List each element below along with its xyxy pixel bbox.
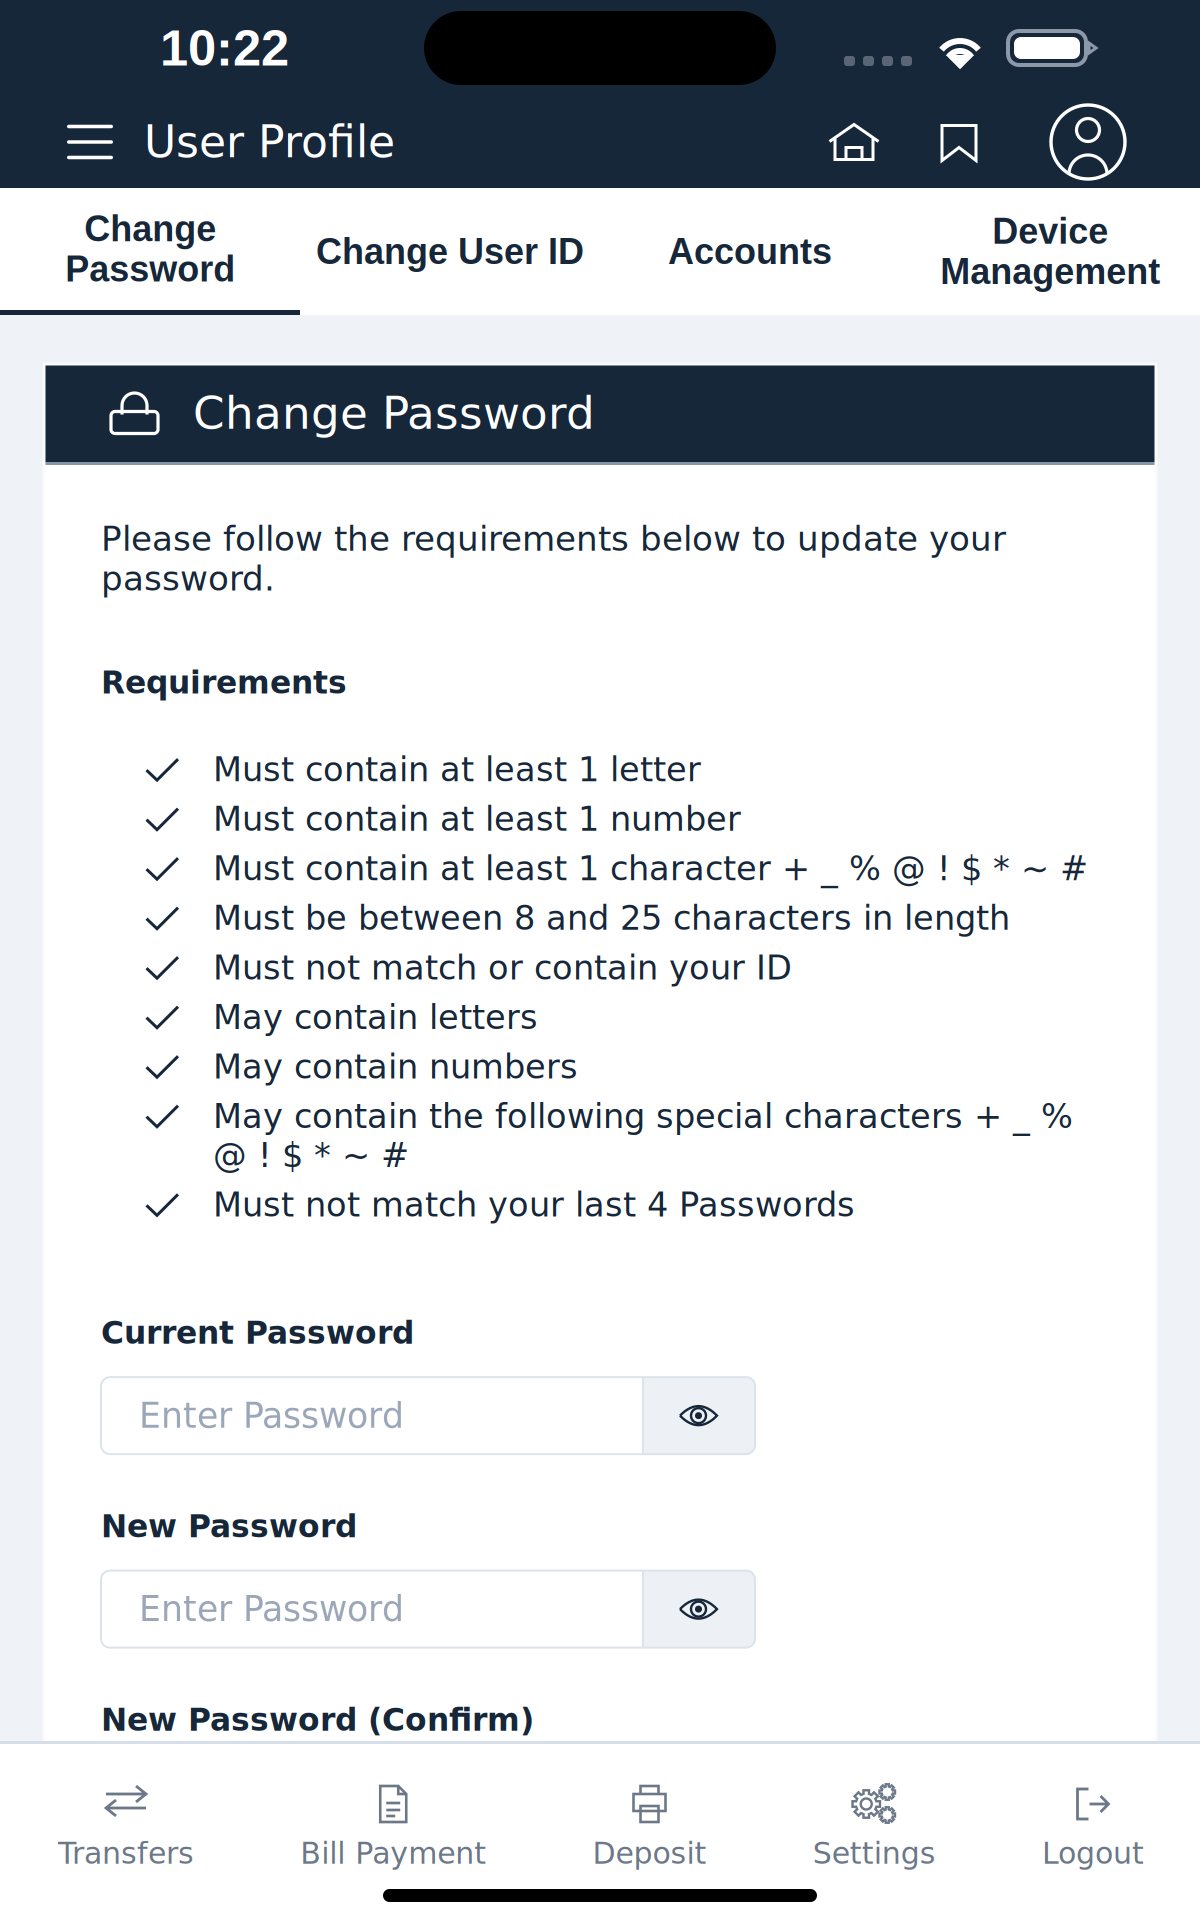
staticText: Please follow the requirements below to … <box>101 519 1006 598</box>
staticText: New Password <box>101 1508 357 1545</box>
staticText: Deposit <box>592 1836 706 1871</box>
staticText: May contain letters <box>213 998 538 1037</box>
button[interactable]: Deposit <box>592 1783 706 1865</box>
staticText: Device Management <box>940 211 1160 292</box>
staticText: Enter Password <box>139 1589 404 1629</box>
staticText: Must be between 8 and 25 characters in l… <box>213 899 1010 938</box>
staticText: Enter Password <box>139 1395 404 1436</box>
staticText: Must not match or contain your ID <box>213 948 792 987</box>
staticText: Current Password <box>101 1315 414 1351</box>
staticText: Change Password <box>65 209 235 289</box>
button[interactable]: Account <box>1051 105 1125 179</box>
button[interactable]: Transfers <box>58 1783 194 1865</box>
staticText: Logout <box>1042 1836 1144 1871</box>
button[interactable]: Settings <box>813 1783 936 1865</box>
button[interactable]: Change User ID <box>300 188 600 315</box>
staticText: May contain numbers <box>213 1047 578 1086</box>
button[interactable]: Home <box>828 122 880 161</box>
staticText: Bill Payment <box>300 1836 486 1871</box>
button[interactable]: Show Current Password <box>642 1377 755 1454</box>
button[interactable]: Menu <box>62 112 118 172</box>
staticText: Must contain at least 1 character + _ % … <box>213 849 1088 888</box>
staticText: Accounts <box>668 231 832 272</box>
staticText: Must contain at least 1 number <box>213 800 741 839</box>
button[interactable]: Bill Payment <box>300 1783 486 1865</box>
button[interactable]: Change Password <box>0 188 300 315</box>
button[interactable]: Bookmarks <box>940 121 978 162</box>
staticText: Settings <box>813 1836 936 1871</box>
staticText: User Profile <box>144 116 395 168</box>
button[interactable]: Logout <box>1042 1783 1144 1865</box>
staticText: New Password (Confirm) <box>101 1702 534 1738</box>
staticText: Requirements <box>101 664 347 701</box>
staticText: Transfers <box>58 1836 194 1871</box>
staticText: Must not match your last 4 Passwords <box>213 1185 855 1224</box>
staticText: 10:22 <box>160 20 289 76</box>
staticText: Change User ID <box>316 231 584 272</box>
staticText: Change Password <box>193 387 595 439</box>
staticText: Must contain at least 1 letter <box>213 750 701 789</box>
button[interactable]: Show New Password <box>642 1571 755 1648</box>
button[interactable]: Device Management <box>900 188 1200 315</box>
staticText: May contain the following special charac… <box>213 1097 1073 1175</box>
button[interactable]: Accounts <box>600 188 900 315</box>
